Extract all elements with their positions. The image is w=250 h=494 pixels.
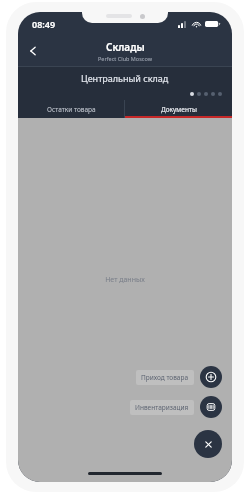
- staticText: 08:49: [32, 18, 56, 30]
- button[interactable]: Приход товара: [136, 366, 222, 388]
- staticText: Документы: [161, 105, 197, 114]
- staticText: Остатки товара: [47, 105, 96, 114]
- button[interactable]: Close: [194, 430, 222, 458]
- staticText: Склады: [106, 40, 145, 54]
- button[interactable]: Инвентаризация: [130, 396, 222, 418]
- staticText: Perfect Club Moscow: [98, 55, 152, 62]
- staticText: Инвентаризация: [135, 403, 189, 412]
- button[interactable]: Документы: [125, 100, 232, 118]
- staticText: Нет данных: [105, 275, 145, 285]
- button[interactable]: Центральный склад: [18, 66, 232, 100]
- button[interactable]: Back: [18, 36, 48, 66]
- staticText: Приход товара: [141, 373, 189, 382]
- staticText: Центральный склад: [81, 72, 169, 84]
- button[interactable]: Остатки товара: [18, 100, 124, 118]
